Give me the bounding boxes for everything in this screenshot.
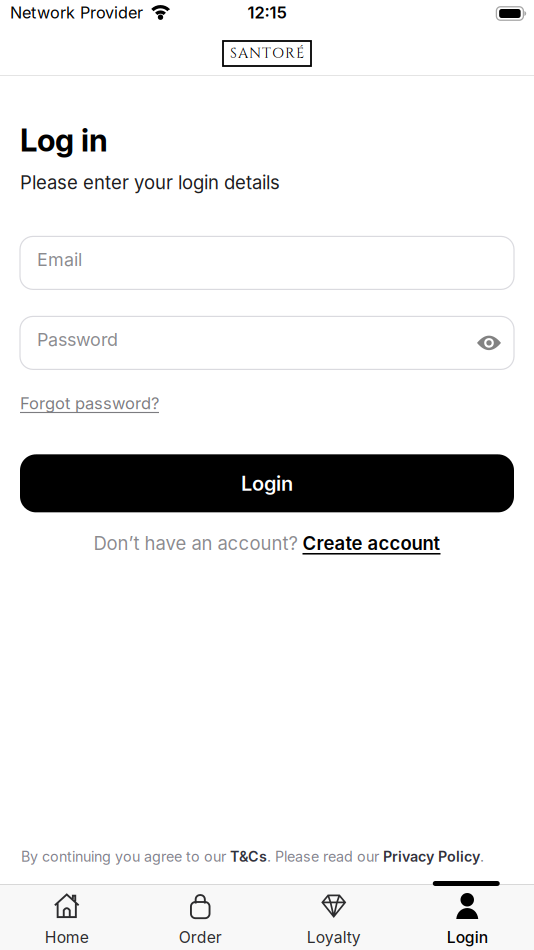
staticText: Loyalty <box>307 928 361 946</box>
staticText: Log in <box>20 122 108 159</box>
staticText: Password <box>37 329 118 350</box>
staticText: By continuing you agree to our <box>21 848 230 865</box>
staticText: Network Provider <box>10 3 143 22</box>
staticText: Email <box>37 249 82 270</box>
button[interactable]: Password <box>20 316 514 369</box>
staticText: Privacy Policy <box>383 848 480 865</box>
button[interactable]: Loyalty <box>267 893 400 946</box>
button[interactable]: Privacy Policy <box>383 848 480 865</box>
button[interactable]: Login <box>20 454 514 512</box>
staticText: S A N T O R É <box>230 44 304 63</box>
staticText: . <box>480 848 484 865</box>
staticText: Don’t have an account? <box>93 532 302 554</box>
button[interactable]: T&Cs <box>230 848 267 865</box>
button[interactable]: Email <box>20 236 514 289</box>
staticText: 12:15 <box>247 3 286 22</box>
button[interactable]: Login <box>400 893 534 946</box>
button[interactable]: Create account <box>302 532 440 554</box>
staticText: Order <box>179 928 222 946</box>
button[interactable]: Home <box>0 893 133 946</box>
staticText: T&Cs <box>230 848 267 865</box>
button[interactable]: Forgot password? <box>20 393 159 413</box>
staticText: Please enter your login details <box>20 172 280 193</box>
staticText: Login <box>447 928 488 946</box>
staticText: Login <box>241 472 293 495</box>
button[interactable]: Show password <box>477 336 514 350</box>
staticText: Create account <box>302 532 440 554</box>
button[interactable]: Order <box>133 893 267 946</box>
staticText: . Please read our <box>267 848 383 865</box>
staticText: Forgot password? <box>20 393 159 413</box>
staticText: Home <box>45 928 89 946</box>
